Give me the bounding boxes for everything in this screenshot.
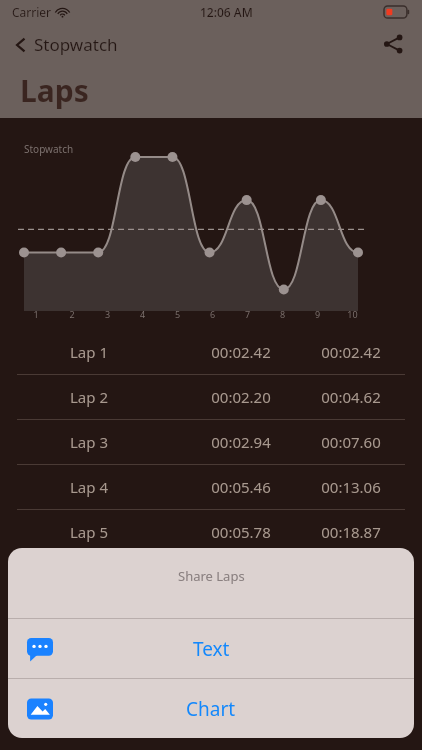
button[interactable]: Stopwatch	[8, 27, 124, 62]
button[interactable]: Lap 3	[0, 420, 422, 465]
staticText: 7	[230, 308, 265, 320]
button[interactable]: Share	[376, 27, 410, 61]
staticText: 1	[18, 308, 54, 320]
staticText: 6	[195, 308, 230, 320]
staticText: Lap 1	[70, 342, 108, 362]
staticText: 00:04.62	[296, 387, 406, 407]
staticText: 4	[125, 308, 160, 320]
staticText: 3	[90, 308, 125, 320]
staticText: 12:06 AM	[200, 4, 253, 20]
staticText: Stopwatch	[34, 33, 118, 56]
staticText: Chart	[186, 696, 236, 722]
staticText: Stopwatch	[24, 142, 74, 156]
staticText: Lap 3	[70, 432, 108, 452]
staticText: Laps	[20, 70, 89, 111]
button[interactable]: Text	[8, 619, 414, 678]
staticText: 00:02.94	[186, 432, 296, 452]
button[interactable]: Chart	[8, 679, 414, 738]
staticText: Text	[193, 636, 230, 662]
staticText: 9	[300, 308, 335, 320]
button[interactable]: Lap 2	[0, 375, 422, 420]
staticText: Lap 5	[70, 522, 108, 542]
button[interactable]: Lap 5	[0, 510, 422, 555]
staticText: 00:13.06	[296, 477, 406, 497]
staticText: Lap 2	[70, 387, 108, 407]
staticText: 00:02.42	[186, 342, 296, 362]
staticText: 00:02.20	[186, 387, 296, 407]
staticText: 00:05.46	[186, 477, 296, 497]
staticText: 00:04.11	[186, 567, 296, 587]
staticText: 2	[54, 308, 90, 320]
staticText: 00:18.87	[296, 522, 406, 542]
staticText: 00:05.78	[186, 522, 296, 542]
staticText: 00:07.60	[296, 432, 406, 452]
button[interactable]: Lap 6	[0, 555, 422, 599]
staticText: 5	[160, 308, 195, 320]
button[interactable]: Lap 4	[0, 465, 422, 510]
staticText: 8	[265, 308, 300, 320]
staticText: Lap 4	[70, 477, 108, 497]
staticText: Carrier	[12, 4, 52, 20]
staticText: 10	[335, 308, 370, 320]
staticText: 00:02.42	[296, 342, 406, 362]
staticText: Share Laps	[178, 567, 245, 585]
button[interactable]: Lap 1	[0, 330, 422, 375]
